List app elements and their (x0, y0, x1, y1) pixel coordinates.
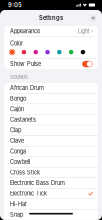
staticText: SOUNDS (10, 74, 28, 80)
button[interactable]: Cross Stick (4, 167, 98, 178)
staticText: 9:05 (8, 1, 22, 9)
button[interactable]: Conga (4, 146, 98, 156)
button[interactable]: Snap (4, 210, 98, 220)
staticText: Cajón (10, 106, 24, 113)
button[interactable]: Castanets (4, 115, 98, 125)
button[interactable]: Appearance (4, 26, 98, 36)
staticText: Electronic Bass Drum (10, 180, 65, 186)
staticText: Clave (10, 137, 24, 144)
button[interactable]: Colour swatch (81, 49, 85, 55)
button[interactable]: Clave (4, 136, 98, 146)
staticText: Snap (10, 211, 23, 218)
button[interactable]: Show Pulse (82, 61, 93, 67)
button[interactable]: African Drum (4, 83, 98, 93)
button[interactable]: Electronic Bass Drum (4, 178, 98, 188)
staticText: Electronic Tick (10, 190, 47, 197)
staticText: Show Pulse (10, 61, 41, 67)
button[interactable]: Hi-Hat (4, 199, 98, 209)
button[interactable]: Cajón (4, 104, 98, 114)
staticText: Castanets (10, 116, 36, 123)
button[interactable]: Colour swatch (57, 49, 62, 55)
button[interactable]: Colour swatch (69, 49, 73, 55)
staticText: Bongo (10, 95, 26, 102)
staticText: Appearance (10, 28, 40, 35)
button[interactable]: Colour swatch (45, 49, 50, 55)
button[interactable]: Colour swatch (10, 49, 14, 55)
button[interactable]: Colour swatch (22, 49, 26, 55)
staticText: Conga (10, 148, 26, 155)
staticText: Cowbell (10, 158, 30, 165)
staticText: Clap (10, 127, 21, 134)
staticText: African Drum (10, 85, 44, 91)
staticText: Settings (39, 14, 63, 21)
button[interactable]: Clap (4, 125, 98, 135)
staticText: Light (78, 28, 90, 35)
staticText: Color (10, 40, 23, 47)
staticText: Cross Stick (10, 169, 40, 176)
button[interactable]: Cowbell (4, 157, 98, 167)
button[interactable]: Bongo (4, 93, 98, 104)
button[interactable]: Close (89, 14, 97, 22)
staticText: Hi-Hat (10, 201, 27, 207)
button[interactable]: Electronic Tick (4, 188, 98, 199)
button[interactable]: Colour swatch (33, 49, 38, 55)
